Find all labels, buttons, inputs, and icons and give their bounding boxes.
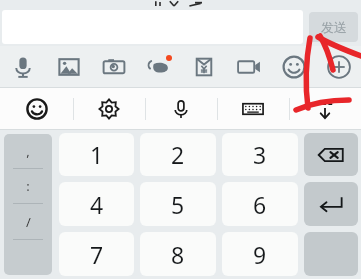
- button[interactable]: 2: [140, 133, 216, 176]
- staticText: 8: [171, 239, 185, 270]
- staticText: 发送: [321, 19, 347, 35]
- button[interactable]: ,: [4, 134, 52, 275]
- button[interactable]: Red packet: [181, 46, 226, 88]
- button[interactable]: 发送: [309, 12, 358, 42]
- button[interactable]: 5: [140, 182, 216, 226]
- staticText: 3: [253, 139, 267, 170]
- button[interactable]: 9: [222, 232, 298, 276]
- button[interactable]: Voice input: [136, 46, 181, 88]
- staticText: ,: [26, 142, 30, 160]
- button[interactable]: Enter: [304, 182, 358, 226]
- button[interactable]: 1: [59, 133, 134, 176]
- button[interactable]: Voice: [145, 88, 217, 130]
- staticText: 6: [253, 189, 267, 220]
- staticText: /: [26, 213, 31, 231]
- button[interactable]: Voice message: [0, 46, 46, 88]
- button[interactable]: Settings: [73, 88, 145, 130]
- button[interactable]: Backspace: [304, 133, 358, 176]
- button[interactable]: Space: [304, 232, 358, 276]
- button[interactable]: Emoji: [271, 46, 316, 88]
- button[interactable]: Camera: [91, 46, 136, 88]
- staticText: 1: [90, 139, 104, 170]
- button[interactable]: Keyboard: [217, 88, 289, 130]
- button[interactable]: More: [316, 46, 361, 88]
- staticText: 9: [253, 239, 267, 270]
- button[interactable]: GIF: [226, 46, 271, 88]
- button[interactable]: Photo: [46, 46, 91, 88]
- button[interactable]: 3: [222, 133, 298, 176]
- button[interactable]: 4: [59, 182, 134, 226]
- staticText: 2: [171, 139, 185, 170]
- button[interactable]: 8: [140, 232, 216, 276]
- button[interactable]: 6: [222, 182, 298, 226]
- button[interactable]: 7: [59, 232, 134, 276]
- button[interactable]: Hide keyboard: [289, 88, 361, 130]
- button[interactable]: Emoji: [0, 88, 73, 130]
- staticText: :: [26, 177, 30, 195]
- staticText: 7: [90, 239, 104, 270]
- staticText: 5: [171, 189, 185, 220]
- staticText: 4: [90, 189, 104, 220]
